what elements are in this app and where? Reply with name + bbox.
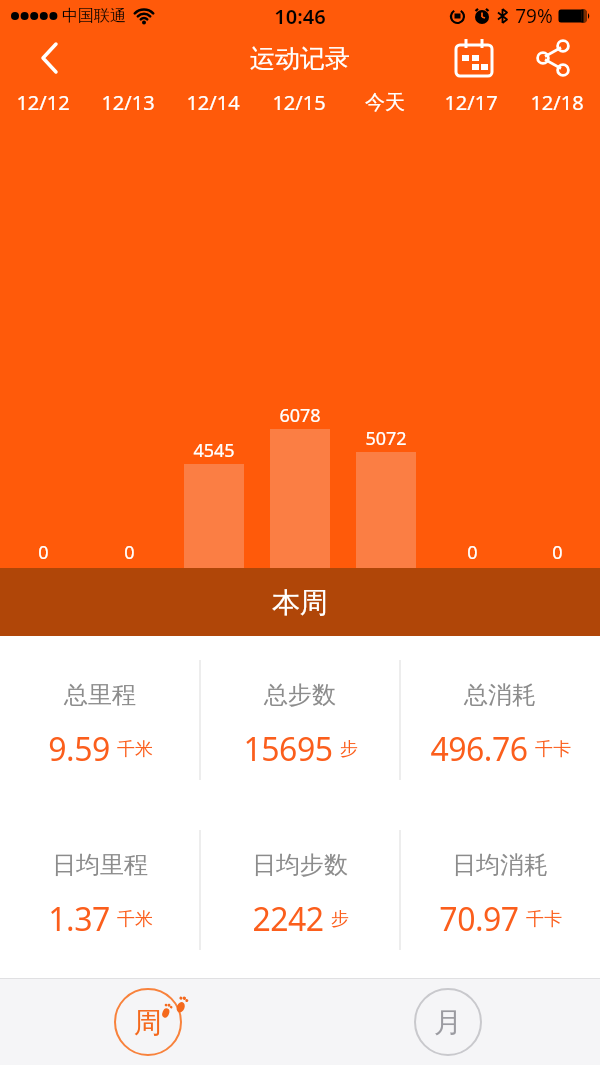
staticText: 10:46 (274, 3, 326, 30)
staticText: 12/18 (530, 89, 584, 116)
button[interactable]: 12/12 (0, 84, 85, 120)
button[interactable]: 12/18 (514, 84, 600, 120)
staticText: 79% (515, 3, 553, 29)
staticText: 0 (38, 540, 49, 564)
staticText: 中国联通 (62, 6, 126, 26)
staticText: 运动记录 (250, 43, 350, 74)
staticText: 步 (331, 908, 349, 931)
button[interactable]: 总步数 (200, 636, 400, 806)
button[interactable] (34, 38, 66, 78)
staticText: 日均消耗 (452, 850, 548, 880)
staticText: 总里程 (64, 680, 136, 710)
staticText: 12/13 (101, 89, 155, 116)
staticText: 0 (467, 540, 478, 564)
button[interactable]: 12/15 (256, 84, 342, 120)
button[interactable]: 日均步数 (200, 806, 400, 978)
staticText: 步 (340, 738, 358, 761)
staticText: 9.59 (48, 727, 110, 771)
button[interactable] (532, 37, 574, 79)
staticText: 总消耗 (464, 680, 536, 710)
button[interactable]: 日均消耗 (400, 806, 600, 978)
staticText: 4545 (193, 438, 235, 462)
staticText: 月 (434, 1005, 462, 1040)
staticText: 12/12 (16, 89, 70, 116)
button[interactable]: 月 (414, 988, 482, 1056)
button[interactable]: 12/14 (170, 84, 256, 120)
staticText: 15695 (243, 727, 333, 771)
staticText: 周 (134, 1005, 162, 1040)
staticText: 1.37 (48, 897, 110, 941)
staticText: 千米 (117, 738, 153, 761)
button[interactable]: 本周 (0, 568, 600, 636)
staticText: 5072 (365, 426, 407, 450)
staticText: 千米 (117, 908, 153, 931)
button[interactable] (452, 36, 496, 80)
staticText: 今天 (365, 90, 405, 115)
button[interactable]: 今天 (342, 84, 428, 120)
button[interactable]: 12/13 (85, 84, 170, 120)
staticText: 12/17 (444, 89, 498, 116)
staticText: 496.76 (430, 727, 528, 771)
button[interactable]: 总消耗 (400, 636, 600, 806)
staticText: 日均里程 (52, 850, 148, 880)
staticText: 总步数 (264, 680, 336, 710)
staticText: 12/15 (272, 89, 326, 116)
button[interactable]: 总里程 (0, 636, 200, 806)
staticText: 本周 (272, 585, 328, 620)
button[interactable]: 12/17 (428, 84, 514, 120)
staticText: 12/14 (186, 89, 240, 116)
staticText: 2242 (252, 897, 324, 941)
staticText: 0 (552, 540, 563, 564)
button[interactable]: 周 (114, 988, 182, 1056)
staticText: 0 (124, 540, 135, 564)
button[interactable]: 日均里程 (0, 806, 200, 978)
staticText: 日均步数 (252, 850, 348, 880)
staticText: 千卡 (526, 908, 562, 931)
staticText: 千卡 (535, 738, 571, 761)
staticText: 6078 (279, 403, 321, 427)
staticText: 70.97 (439, 897, 519, 941)
